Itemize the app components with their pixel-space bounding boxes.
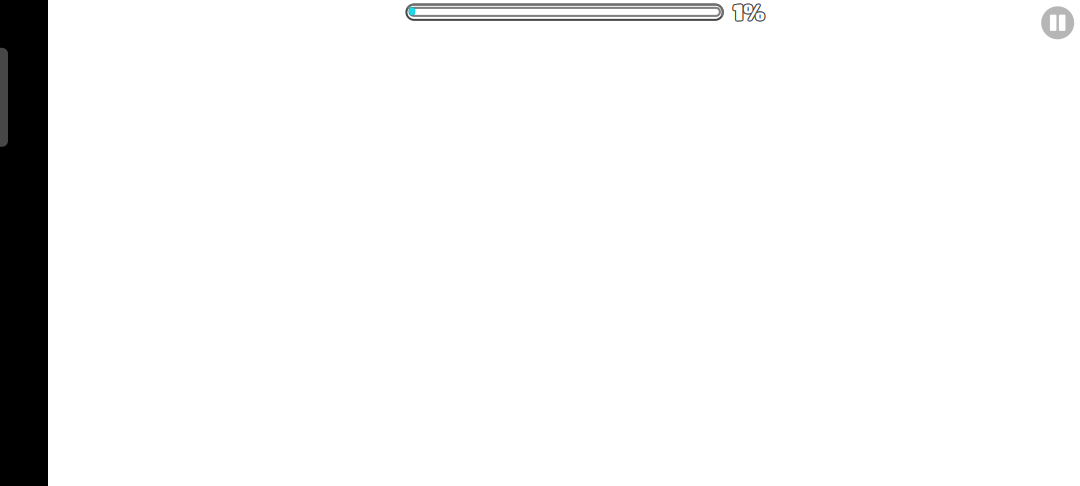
staticText: 1% (733, 0, 765, 25)
staticText: 1% (734, 0, 766, 25)
staticText: 1% (732, 0, 764, 25)
staticText: 1% (734, 0, 766, 25)
staticText: 1% (734, 0, 766, 24)
staticText: 1% (732, 0, 764, 25)
staticText: 1% (732, 0, 764, 24)
button[interactable]: Pause (1041, 6, 1074, 39)
staticText: 1% (733, 0, 765, 26)
staticText: 1% (733, 0, 765, 23)
